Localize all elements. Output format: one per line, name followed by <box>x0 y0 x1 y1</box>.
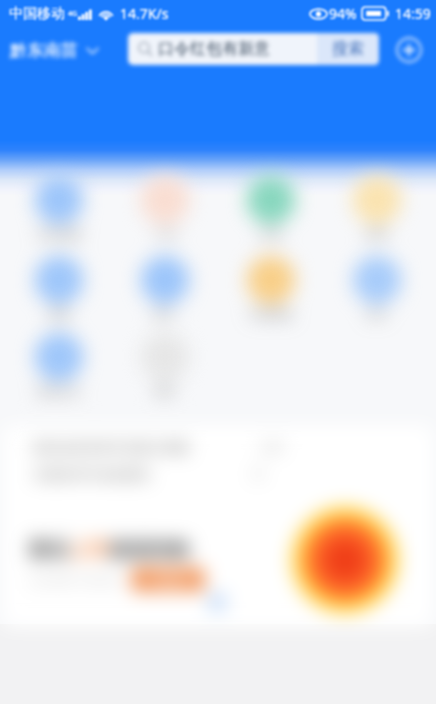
staticText: 我的关注 <box>37 384 81 398</box>
button[interactable]: 百度地图 <box>6 176 112 241</box>
staticText: 14.7K/s <box>120 4 169 23</box>
button[interactable]: 更多 <box>112 333 218 398</box>
button[interactable]: 搜索 <box>317 33 379 65</box>
staticText: 搜索 <box>332 39 364 59</box>
button[interactable]: Add <box>396 37 422 63</box>
button[interactable]: 黔东南苗 <box>10 40 99 61</box>
staticText: 游戏 <box>260 227 282 241</box>
button[interactable]: 图片 <box>112 256 218 321</box>
button[interactable]: 音乐 <box>324 256 430 321</box>
staticText: 图片 <box>154 307 176 321</box>
staticText: 上市 <box>69 537 109 562</box>
staticText: 94% <box>329 4 357 23</box>
staticText: 音乐 <box>366 307 388 321</box>
staticText: 立即购买 <box>144 572 192 587</box>
button[interactable]: 贴吧 <box>324 176 430 241</box>
button[interactable]: 立即购买 <box>132 568 204 591</box>
staticText: 百度地图 <box>37 227 81 241</box>
staticText: 贴吧 <box>366 227 388 241</box>
staticText: 百度网盘 <box>249 307 293 321</box>
staticText: 4G <box>68 9 78 19</box>
staticText: 中国移动 <box>9 5 65 23</box>
staticText: 新品 <box>29 537 69 562</box>
staticText: 视频 <box>48 307 70 321</box>
button[interactable]: 我的关注 <box>6 333 112 398</box>
staticText: 口令红包有新意 <box>158 39 270 59</box>
button[interactable]: 百度网盘 <box>218 256 324 321</box>
button[interactable]: 游戏 <box>218 176 324 241</box>
staticText: 黔东南苗 <box>10 40 78 61</box>
staticText: 14:59 <box>395 4 431 23</box>
staticText: 超值抢购 <box>109 537 189 562</box>
button[interactable]: 小说 <box>112 176 218 241</box>
button[interactable]: 口令红包有新意 <box>128 33 379 65</box>
button[interactable]: 视频 <box>6 256 112 321</box>
staticText: 小说 <box>154 227 176 241</box>
button[interactable]: 全国多地气温创新高 <box>33 466 263 482</box>
button[interactable]: 国内油价迎来年内最大跌幅 <box>33 439 283 455</box>
